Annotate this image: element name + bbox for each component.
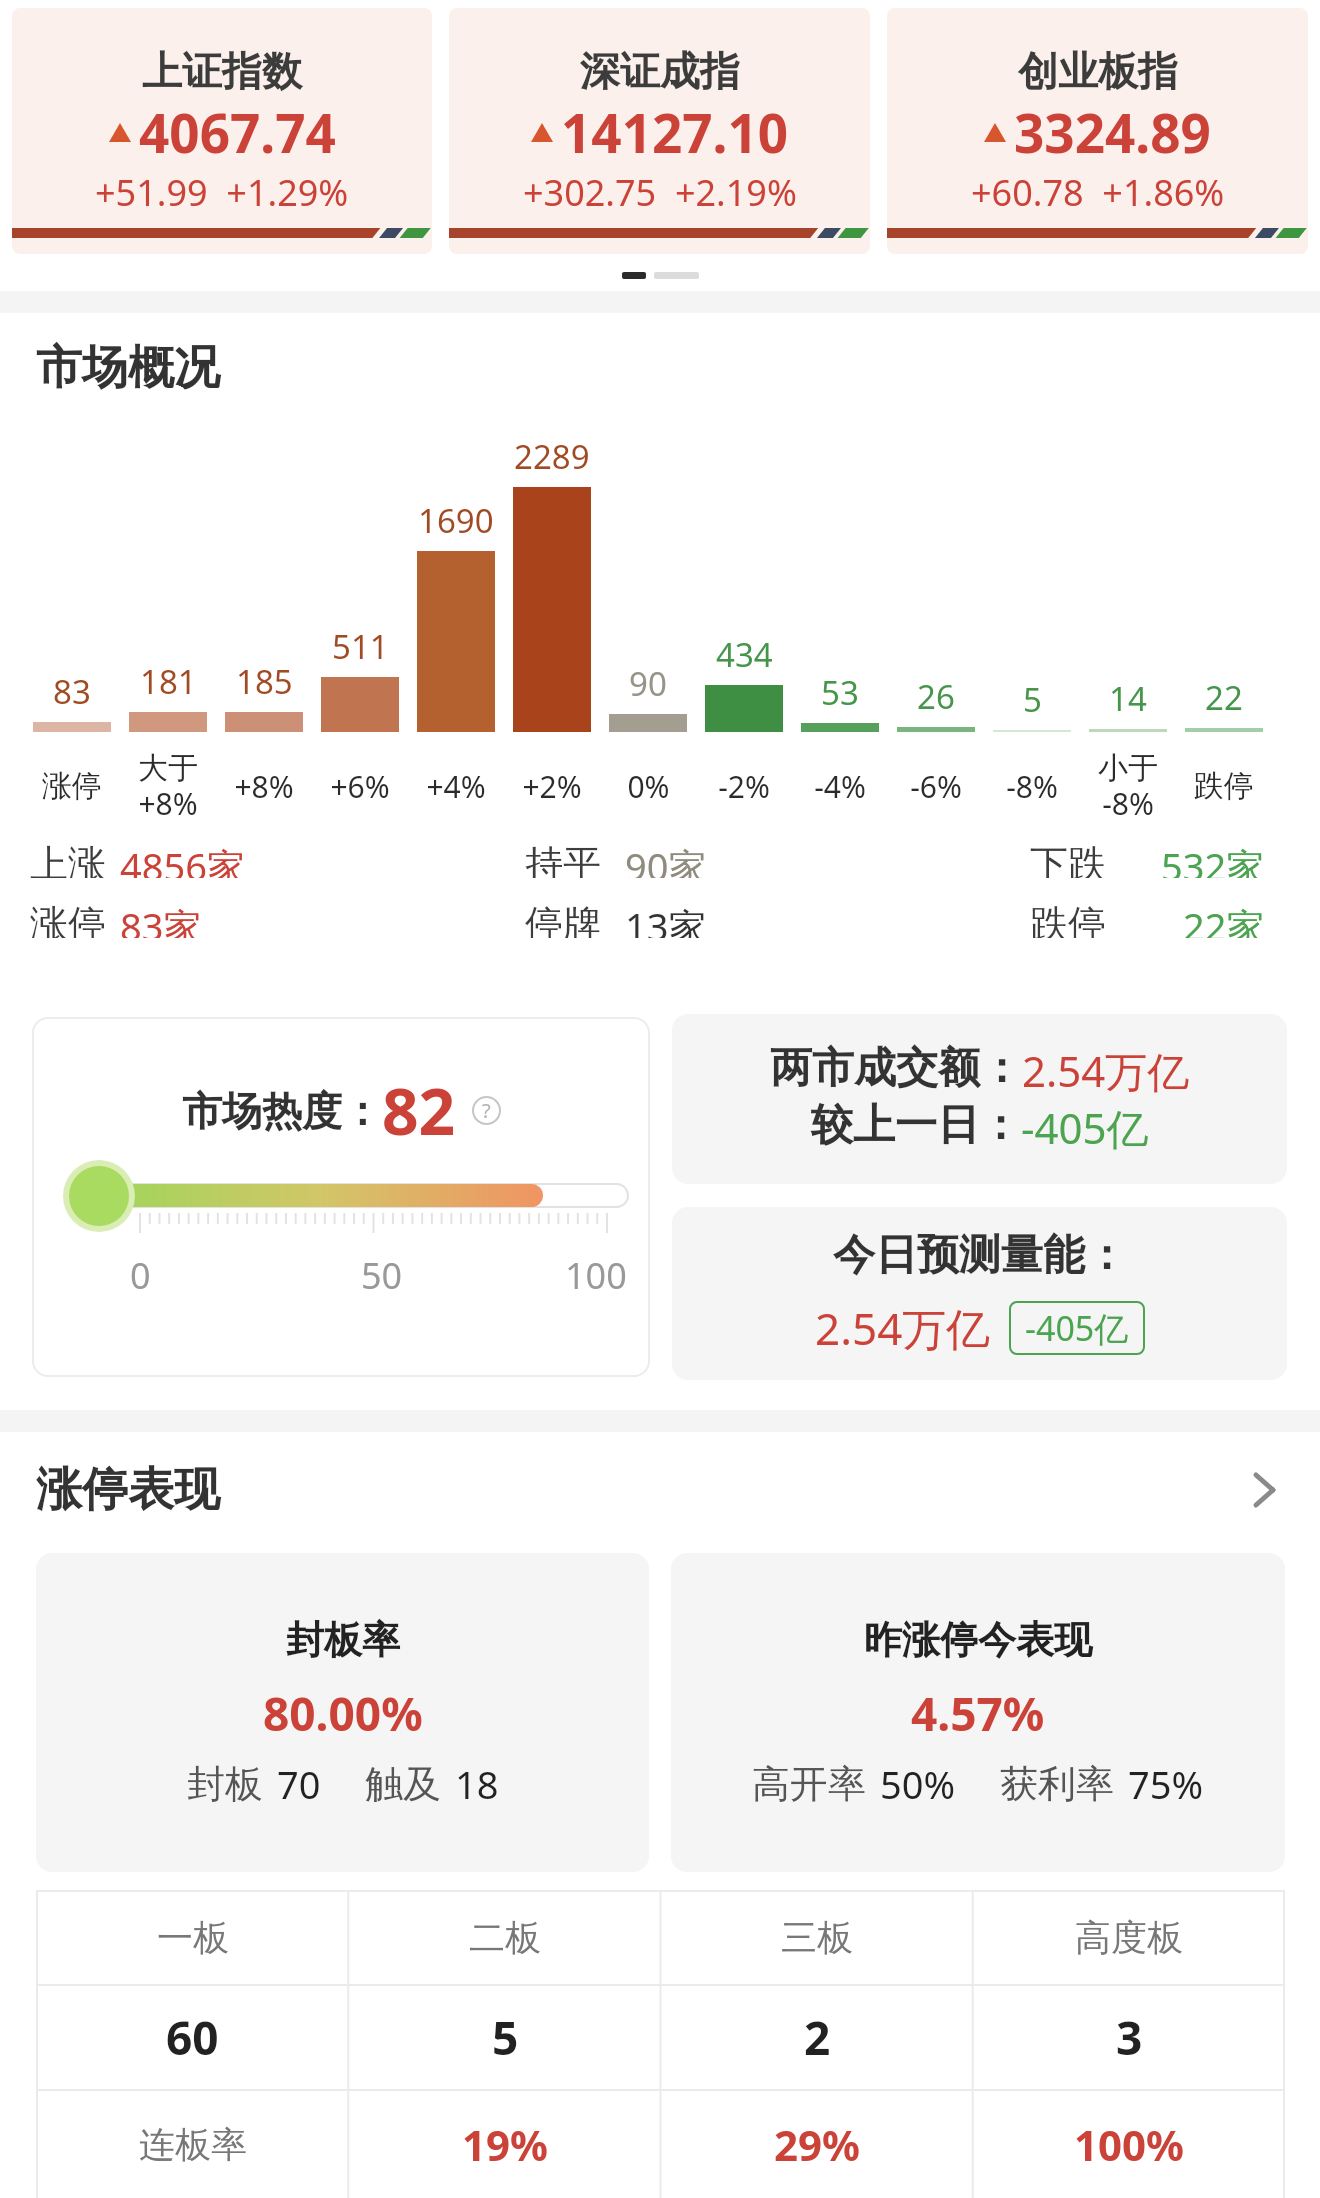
button[interactable]: 市场热度： [32,1017,650,1377]
staticText: 获利率 [1000,1760,1114,1808]
staticText: 4067.74 [139,96,336,168]
staticText: 60 [166,2006,219,2069]
staticText: 22 [1205,675,1243,720]
staticText: 532家 [1161,840,1265,878]
staticText: 434 [716,632,773,677]
staticText: 下跌 [1030,840,1106,878]
staticText: 高度板 [1075,1915,1183,1960]
staticText: 19% [462,2116,548,2173]
staticText: 5 [492,2006,519,2069]
staticText: -405亿 [1021,1099,1149,1156]
staticText: 2 [804,2006,831,2069]
staticText: 两市成交额： [770,1042,1022,1095]
staticText: 50% [880,1758,956,1810]
staticText: -6% [910,766,962,807]
staticText: 上证指数 [142,46,302,96]
staticText: 100 [565,1251,627,1300]
staticText: 三板 [781,1915,853,1960]
staticText: 4856家 [120,840,245,878]
staticText: 26 [917,674,955,719]
staticText: 3 [1116,2006,1143,2069]
staticText: 14127.10 [561,96,789,168]
staticText: 511 [332,624,389,669]
button[interactable]: 深证成指 [449,8,870,254]
staticText: ? [482,1097,491,1124]
staticText: 2.54万亿 [815,1298,991,1358]
staticText: 涨停表现 [36,1461,220,1519]
staticText: 深证成指 [580,46,740,96]
staticText: -405亿 [1025,1305,1129,1351]
staticText: 3324.89 [1014,96,1211,168]
staticText: 大于 +8% [138,749,198,824]
staticText: 14 [1109,676,1147,721]
staticText: 停牌 [525,900,601,938]
staticText: +302.75 +2.19% [523,168,797,217]
staticText: 昨涨停今表现 [864,1616,1092,1664]
staticText: 0% [627,766,670,807]
staticText: 创业板指 [1018,46,1178,96]
staticText: 封板 [187,1760,263,1808]
staticText: +60.78 +1.86% [971,168,1225,217]
staticText: 封板率 [286,1616,400,1664]
staticText: 涨停 [42,767,102,805]
staticText: 29% [774,2116,860,2173]
staticText: 83家 [120,900,202,938]
button[interactable]: 涨停表现 [0,1432,1320,1548]
staticText: 0 [130,1251,151,1300]
staticText: 5 [1023,677,1042,722]
staticText: 4.57% [911,1682,1045,1745]
staticText: 触及 [365,1760,441,1808]
staticText: 22家 [1183,900,1265,938]
staticText: 上涨 [30,840,106,878]
staticText: 100% [1074,2116,1184,2173]
staticText: 连板率 [139,2122,247,2167]
staticText: +8% [234,766,294,807]
staticText: 53 [821,670,859,715]
staticText: 90 [629,661,667,706]
staticText: -8% [1006,766,1058,807]
button[interactable]: 封板率 [36,1553,649,1872]
staticText: 2.54万亿 [1022,1042,1190,1099]
staticText: 185 [236,659,293,704]
button[interactable]: 昨涨停今表现 [671,1553,1285,1872]
button[interactable]: 上证指数 [12,8,432,254]
staticText: 二板 [469,1915,541,1960]
staticText: 市场热度： [182,1086,382,1136]
staticText: 1690 [418,498,494,543]
staticText: +51.99 +1.29% [95,168,349,217]
staticText: 90家 [625,840,707,878]
staticText: 75% [1128,1758,1204,1810]
staticText: +4% [426,766,486,807]
staticText: 2289 [514,434,590,479]
staticText: 持平 [525,840,601,878]
staticText: 80.00% [263,1682,423,1745]
staticText: 跌停 [1030,900,1106,938]
staticText: -4% [814,766,866,807]
staticText: 今日预测量能： [833,1229,1127,1282]
staticText: 18 [455,1758,499,1810]
staticText: 一板 [157,1915,229,1960]
staticText: 70 [277,1758,321,1810]
staticText: +2% [522,766,582,807]
staticText: 13家 [625,900,707,938]
staticText: +6% [330,766,390,807]
staticText: 市场概况 [36,339,220,397]
staticText: 跌停 [1194,767,1254,805]
staticText: 181 [140,659,197,704]
staticText: 较上一日： [811,1099,1021,1152]
button[interactable]: 创业板指 [887,8,1308,254]
staticText: 小于 -8% [1098,749,1158,824]
staticText: 涨停 [30,900,106,938]
button[interactable]: 今日预测量能： [672,1207,1287,1380]
button[interactable]: 两市成交额： [672,1014,1287,1184]
staticText: -2% [718,766,770,807]
staticText: 82 [382,1067,456,1154]
staticText: 83 [53,669,91,714]
staticText: 50 [361,1251,403,1300]
staticText: 高开率 [752,1760,866,1808]
